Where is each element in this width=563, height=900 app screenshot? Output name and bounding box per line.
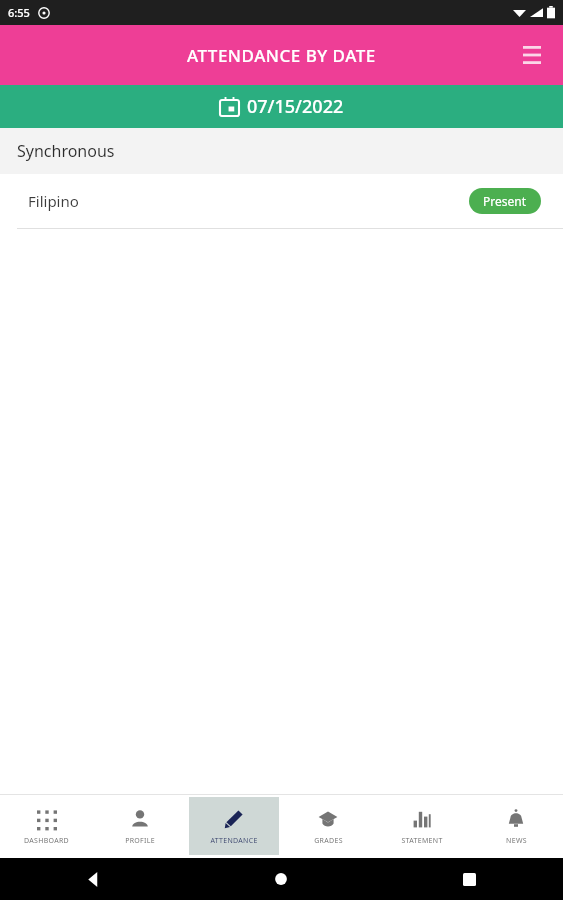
button[interactable]: STATEMENT (377, 797, 467, 855)
staticText: Filipino (28, 191, 79, 211)
staticText: 6:55 (8, 5, 30, 20)
button[interactable]: GRADES (283, 797, 373, 855)
staticText: NEWS (506, 836, 527, 846)
button[interactable]: ATTENDANCE (189, 797, 279, 855)
staticText: PROFILE (125, 836, 155, 846)
button[interactable]: DASHBOARD (2, 797, 91, 855)
button[interactable]: Filipino (0, 174, 563, 229)
staticText: DASHBOARD (24, 836, 69, 846)
staticText: Synchronous (17, 140, 115, 162)
staticText: Present (483, 193, 527, 209)
button[interactable]: NEWS (471, 797, 561, 855)
button[interactable]: 07/15/2022 (0, 85, 563, 128)
staticText: STATEMENT (401, 836, 443, 846)
staticText: ATTENDANCE BY DATE (187, 44, 376, 67)
button[interactable]: PROFILE (95, 797, 185, 855)
staticText: ATTENDANCE (210, 836, 258, 846)
staticText: 07/15/2022 (247, 94, 344, 119)
button[interactable]: Menu (515, 38, 549, 72)
staticText: GRADES (314, 836, 343, 846)
